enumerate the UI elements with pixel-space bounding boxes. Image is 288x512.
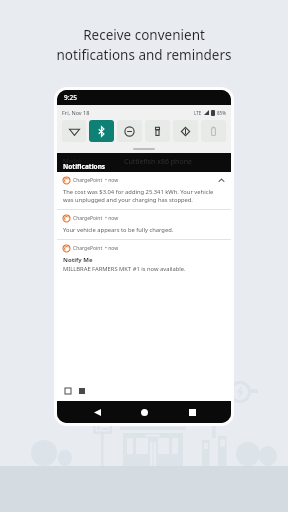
button[interactable]: Manage notifications	[64, 387, 72, 395]
button[interactable]: ChargePoint	[57, 240, 231, 278]
button[interactable]: Flashlight	[145, 120, 170, 142]
button[interactable]: ChargePoint	[57, 172, 231, 209]
staticText: • now	[105, 177, 119, 184]
button[interactable]: Back	[89, 404, 105, 420]
button[interactable]: Bluetooth	[89, 120, 114, 142]
button[interactable]: Clear all	[78, 387, 86, 395]
staticText: ChargePoint	[73, 177, 103, 184]
button[interactable]: Wi-Fi	[62, 120, 86, 142]
staticText: Fri, Nov 18	[62, 109, 90, 116]
button[interactable]: ChargePoint	[57, 210, 231, 239]
button[interactable]: Auto-rotate	[173, 120, 198, 142]
staticText: MILLBRAE FARMERS MKT #1 is now available…	[63, 265, 186, 273]
staticText: LTE	[194, 110, 202, 116]
staticText: Notify Me	[63, 256, 93, 264]
staticText: Model	[63, 157, 81, 165]
button[interactable]: Battery Saver	[201, 120, 226, 142]
staticText: • now	[105, 215, 119, 222]
staticText: ChargePoint	[73, 215, 103, 222]
staticText: The cost was $3.04 for adding 25.341 kWh…	[63, 188, 225, 204]
staticText: ChargePoint	[73, 245, 103, 252]
staticText: Receive convenient notifications and rem…	[0, 26, 288, 64]
staticText: Notifications	[63, 162, 106, 171]
staticText: 85%	[217, 110, 226, 116]
button[interactable]: Recents	[184, 404, 200, 420]
staticText: Cuttlefish x86 phone	[124, 157, 192, 167]
staticText: • now	[105, 245, 119, 252]
staticText: Your vehicle appears to be fully charged…	[63, 226, 174, 234]
button[interactable]: Home	[136, 404, 152, 420]
staticText: 9:25	[64, 93, 77, 102]
button[interactable]: Do Not Disturb	[117, 120, 142, 142]
